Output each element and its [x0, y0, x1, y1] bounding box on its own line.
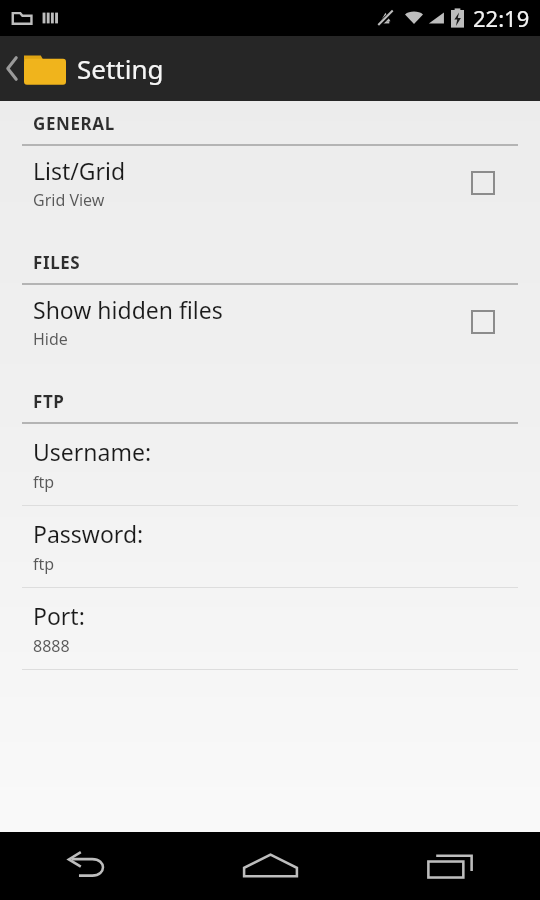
- staticText: Setting: [77, 51, 164, 86]
- staticText: Show hidden files: [33, 294, 223, 325]
- button[interactable]: Back: [0, 832, 180, 900]
- staticText: List/Grid: [33, 155, 126, 186]
- staticText: Grid View: [33, 189, 105, 211]
- staticText: Hide: [33, 328, 68, 350]
- staticText: Username:: [33, 436, 152, 467]
- staticText: Password:: [33, 518, 144, 549]
- staticText: GENERAL: [33, 112, 115, 135]
- button[interactable]: Recent apps: [360, 832, 540, 900]
- button[interactable]: Password:: [0, 506, 540, 587]
- staticText: Port:: [33, 600, 85, 631]
- button[interactable]: Port:: [0, 588, 540, 669]
- staticText: 8888: [33, 635, 70, 657]
- staticText: 22:19: [473, 3, 530, 33]
- button[interactable]: Back: [0, 36, 540, 101]
- staticText: FTP: [33, 390, 65, 413]
- staticText: ftp: [33, 471, 55, 493]
- button[interactable]: Home: [180, 832, 360, 900]
- button[interactable]: Show hidden files: [0, 285, 540, 359]
- button[interactable]: List/Grid: [0, 146, 540, 220]
- staticText: FILES: [33, 251, 81, 274]
- staticText: ftp: [33, 553, 55, 575]
- button[interactable]: Username:: [0, 424, 540, 505]
